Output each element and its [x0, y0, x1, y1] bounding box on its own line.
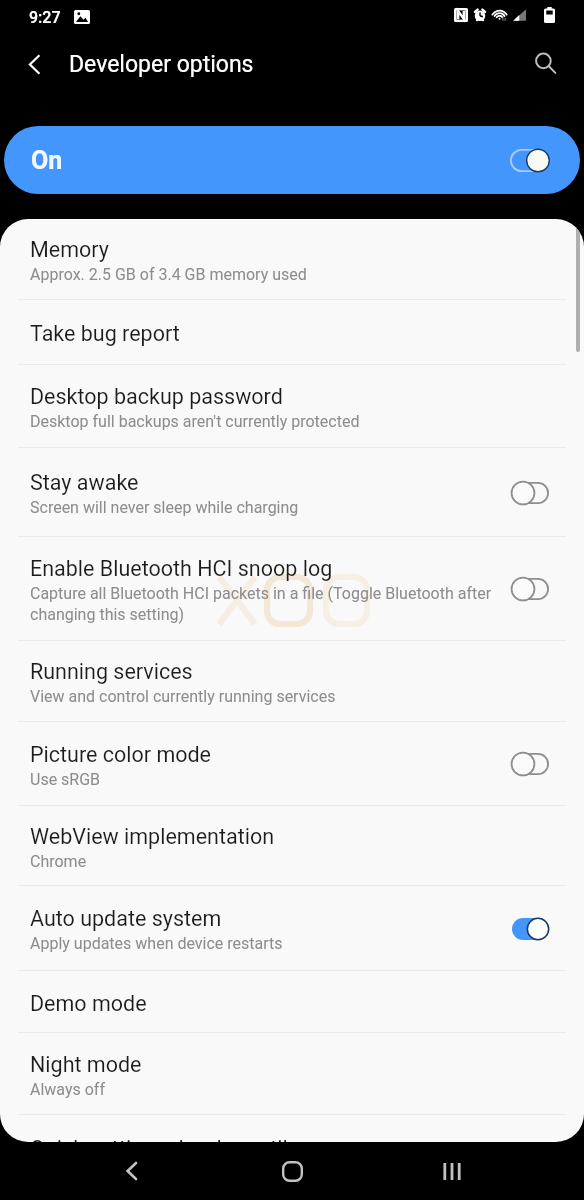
staticText: Take bug report: [30, 321, 180, 346]
button[interactable]: Toggle off: [506, 747, 554, 781]
button[interactable]: Running services: [0, 641, 584, 722]
button[interactable]: Memory: [0, 219, 584, 300]
staticText: Developer options: [69, 51, 254, 78]
button[interactable]: Auto update system: [0, 886, 584, 971]
staticText: Always off: [30, 1080, 105, 1099]
button[interactable]: Toggle off: [506, 476, 554, 510]
staticText: Capture all Bluetooth HCI packets in a f…: [30, 584, 492, 624]
staticText: Night mode: [30, 1052, 142, 1077]
staticText: Enable Bluetooth HCI snoop log: [30, 556, 333, 581]
staticText: Memory: [30, 237, 109, 262]
button[interactable]: Quick settings developer tiles: [0, 1115, 584, 1142]
staticText: Desktop backup password: [30, 384, 283, 409]
button[interactable]: Toggle on: [506, 912, 554, 946]
staticText: Quick settings developer tiles: [30, 1136, 311, 1142]
button[interactable]: Demo mode: [0, 971, 584, 1033]
button[interactable]: Enable Bluetooth HCI snoop log: [0, 537, 584, 641]
staticText: Stay awake: [30, 470, 139, 495]
button[interactable]: Home: [264, 1143, 320, 1199]
staticText: Screen will never sleep while charging: [30, 498, 299, 517]
button[interactable]: Recent apps: [424, 1143, 480, 1199]
staticText: WebView implementation: [30, 824, 275, 849]
staticText: Chrome: [30, 852, 87, 871]
staticText: Desktop full backups aren't currently pr…: [30, 412, 360, 431]
staticText: Use sRGB: [30, 770, 101, 789]
button[interactable]: Toggle off: [506, 572, 554, 606]
staticText: Running services: [30, 659, 193, 684]
staticText: 9:27: [29, 8, 61, 27]
button[interactable]: Take bug report: [0, 300, 584, 365]
button[interactable]: Back: [104, 1143, 160, 1199]
button[interactable]: Desktop backup password: [0, 365, 584, 448]
staticText: Picture color mode: [30, 742, 212, 767]
button[interactable]: Night mode: [0, 1033, 584, 1115]
staticText: Demo mode: [30, 991, 147, 1016]
button[interactable]: WebView implementation: [0, 806, 584, 886]
button[interactable]: On: [4, 126, 580, 194]
staticText: Auto update system: [30, 906, 222, 931]
button[interactable]: Search: [523, 41, 569, 87]
button[interactable]: Navigate up: [11, 41, 57, 87]
staticText: On: [31, 146, 63, 175]
staticText: Approx. 2.5 GB of 3.4 GB memory used: [30, 265, 307, 284]
button[interactable]: Stay awake: [0, 448, 584, 537]
staticText: View and control currently running servi…: [30, 687, 336, 706]
staticText: Apply updates when device restarts: [30, 934, 283, 953]
button[interactable]: Picture color mode: [0, 722, 584, 806]
